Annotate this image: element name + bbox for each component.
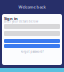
- button[interactable]: [4, 44, 60, 48]
- staticText: Sign in: [4, 16, 18, 21]
- staticText: Welcome back: [18, 4, 45, 10]
- staticText: Enter your details below: [4, 20, 38, 23]
- staticText: Forgot password?: [20, 50, 43, 53]
- button[interactable]: [4, 39, 60, 43]
